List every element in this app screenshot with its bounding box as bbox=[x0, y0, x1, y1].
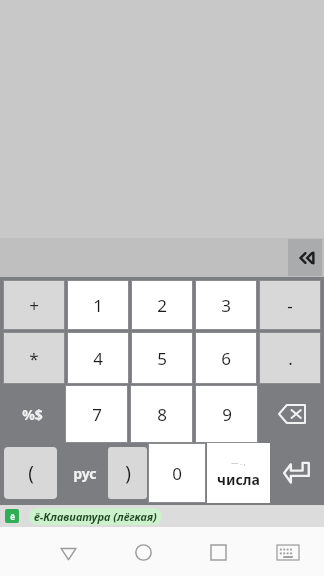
button[interactable]: Switch keyboard bbox=[268, 532, 308, 572]
staticText: — . , bbox=[231, 458, 246, 468]
button[interactable]: Hide keyboard bbox=[288, 239, 322, 276]
button[interactable]: - bbox=[260, 281, 320, 329]
button[interactable]: Home bbox=[123, 532, 163, 572]
staticText: 5 bbox=[157, 347, 167, 370]
staticText: 9 bbox=[222, 403, 232, 426]
button[interactable]: 8 bbox=[131, 386, 192, 442]
button[interactable]: 1 bbox=[68, 281, 128, 329]
button[interactable]: 3 bbox=[196, 281, 256, 329]
staticText: ё bbox=[10, 511, 15, 522]
staticText: ) bbox=[125, 460, 131, 486]
button[interactable]: ( bbox=[4, 447, 57, 499]
staticText: 8 bbox=[157, 403, 167, 426]
staticText: 7 bbox=[92, 403, 102, 426]
button[interactable]: + bbox=[4, 281, 64, 329]
button[interactable]: 7 bbox=[66, 386, 127, 442]
staticText: 1 bbox=[93, 294, 103, 317]
button[interactable]: . bbox=[260, 333, 320, 383]
button[interactable]: 5 bbox=[132, 333, 192, 383]
button[interactable]: %$ bbox=[0, 385, 64, 443]
button[interactable]: рус bbox=[61, 443, 108, 503]
staticText: ё-Клавиатура (лёгкая) bbox=[34, 509, 157, 524]
staticText: %$ bbox=[22, 405, 43, 424]
button[interactable]: Backspace bbox=[259, 385, 324, 443]
button[interactable]: Enter bbox=[270, 443, 324, 503]
button[interactable]: Recents bbox=[198, 532, 238, 572]
button[interactable]: Back bbox=[48, 532, 88, 572]
staticText: . bbox=[288, 347, 293, 370]
staticText: * bbox=[29, 347, 39, 370]
staticText: - bbox=[287, 294, 293, 317]
button[interactable]: 9 bbox=[196, 386, 257, 442]
button[interactable]: 4 bbox=[68, 333, 128, 383]
staticText: рус bbox=[73, 464, 97, 483]
staticText: 2 bbox=[157, 294, 167, 317]
staticText: 4 bbox=[93, 347, 103, 370]
staticText: 6 bbox=[221, 347, 231, 370]
staticText: 0 bbox=[172, 462, 182, 485]
button[interactable]: * bbox=[4, 333, 64, 383]
staticText: + bbox=[29, 294, 39, 317]
button[interactable]: 0 bbox=[149, 444, 205, 502]
button[interactable]: ) bbox=[108, 447, 147, 499]
button[interactable]: ё-Клавиатура (лёгкая) bbox=[34, 509, 157, 524]
staticText: 3 bbox=[221, 294, 231, 317]
button[interactable]: 2 bbox=[132, 281, 192, 329]
staticText: ( bbox=[28, 460, 34, 486]
staticText: числа bbox=[217, 470, 260, 489]
button[interactable]: 6 bbox=[196, 333, 256, 383]
button[interactable]: — . , bbox=[207, 443, 270, 503]
